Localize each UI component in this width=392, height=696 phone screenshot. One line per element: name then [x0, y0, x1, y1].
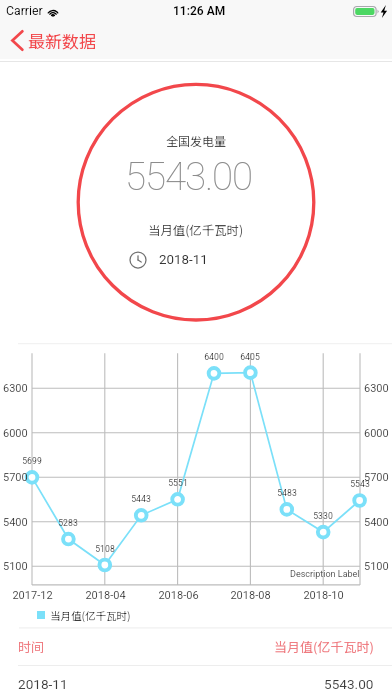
staticText: 当月值(亿千瓦时)	[50, 608, 131, 623]
staticText: 5543	[350, 479, 370, 489]
staticText: 6300	[3, 382, 28, 395]
staticText: 11:26 AM	[173, 4, 226, 18]
staticText: 5543.00	[324, 676, 374, 692]
staticText: 5551	[168, 478, 188, 488]
staticText: 当月值(亿千瓦时)	[148, 221, 244, 239]
button[interactable]: Back	[0, 23, 106, 57]
staticText: 2018-11	[18, 676, 68, 692]
staticText: Description Label	[290, 569, 360, 580]
staticText: 5100	[364, 560, 389, 573]
staticText: Carrier	[6, 4, 43, 18]
staticText: 2018-04	[85, 589, 126, 602]
staticText: 5700	[364, 471, 389, 484]
staticText: 2018-10	[303, 589, 344, 602]
staticText: 5100	[3, 560, 28, 573]
staticText: 5400	[3, 516, 28, 529]
staticText: 5443	[131, 494, 151, 504]
staticText: 6300	[364, 382, 389, 395]
staticText: 全国发电量	[166, 132, 227, 149]
staticText: 当月值(亿千瓦时)	[274, 637, 374, 656]
other: Back	[11, 30, 23, 51]
staticText: 最新数据	[28, 28, 96, 53]
staticText: 5400	[364, 516, 389, 529]
staticText: 2018-08	[230, 589, 271, 602]
staticText: 5283	[58, 518, 78, 528]
staticText: 2018-11	[159, 252, 208, 268]
staticText: 5108	[95, 544, 115, 554]
staticText: 6000	[3, 427, 28, 440]
staticText: 6405	[240, 352, 260, 362]
staticText: 5483	[277, 488, 297, 498]
staticText: 5330	[313, 511, 333, 521]
staticText: 时间	[18, 637, 45, 656]
staticText: 2017-12	[12, 589, 53, 602]
staticText: 6400	[204, 352, 224, 362]
staticText: 5699	[22, 456, 42, 466]
staticText: 2018-06	[158, 589, 199, 602]
staticText: 6000	[364, 427, 389, 440]
staticText: 5543.00	[125, 154, 252, 199]
staticText: 5700	[3, 471, 28, 484]
